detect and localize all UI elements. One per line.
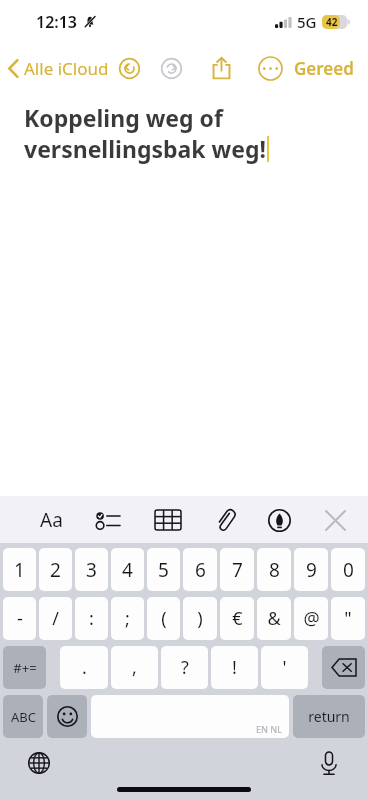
button[interactable]: 6: [183, 548, 217, 591]
button[interactable]: 8: [257, 548, 291, 591]
button[interactable]: 0: [331, 548, 365, 591]
staticText: return: [308, 707, 350, 726]
staticText: 3: [86, 557, 97, 583]
button[interactable]: /: [39, 597, 72, 640]
staticText: 2: [50, 557, 61, 583]
button[interactable]: Change keyboard language: [22, 746, 56, 780]
button[interactable]: Attach: [205, 502, 245, 538]
staticText: 1: [14, 557, 25, 583]
staticText: ?: [181, 655, 189, 680]
button[interactable]: Undo: [116, 55, 142, 81]
staticText: 5: [158, 557, 169, 583]
staticText: /: [52, 606, 59, 631]
staticText: 42: [326, 15, 338, 29]
button[interactable]: Emoji: [47, 695, 87, 738]
staticText: Aa: [40, 507, 63, 533]
button[interactable]: ": [331, 597, 365, 640]
button[interactable]: More: [256, 54, 284, 82]
button[interactable]: Gereed: [286, 51, 368, 86]
button[interactable]: Text format: [30, 502, 72, 538]
staticText: @: [303, 606, 320, 631]
staticText: :: [89, 606, 94, 631]
button[interactable]: Markup: [259, 502, 299, 538]
button[interactable]: Alle iCloud: [0, 51, 115, 86]
staticText: versnellingsbak weg!: [24, 133, 266, 164]
button[interactable]: ?: [161, 646, 208, 689]
staticText: -: [17, 606, 23, 631]
staticText: 6: [195, 557, 206, 583]
staticText: ,: [132, 655, 137, 680]
button[interactable]: Redo: [158, 55, 184, 81]
staticText: ": [344, 606, 352, 631]
staticText: .: [82, 655, 87, 680]
button[interactable]: return: [293, 695, 365, 738]
staticText: !: [232, 655, 237, 680]
staticText: 4: [122, 557, 133, 583]
button[interactable]: Space: [91, 695, 289, 738]
button[interactable]: ': [261, 646, 308, 689]
button[interactable]: ): [183, 597, 217, 640]
staticText: (: [161, 606, 167, 631]
button[interactable]: 1: [3, 548, 36, 591]
button[interactable]: ,: [111, 646, 158, 689]
staticText: €: [232, 606, 243, 631]
button[interactable]: Checklist: [88, 502, 128, 538]
staticText: #+=: [13, 659, 37, 677]
staticText: Alle iCloud: [24, 57, 109, 80]
button[interactable]: Table: [148, 502, 188, 538]
staticText: Koppeling weg of: [24, 102, 223, 133]
button[interactable]: .: [60, 646, 108, 689]
button[interactable]: 5: [147, 548, 180, 591]
button[interactable]: €: [220, 597, 254, 640]
staticText: 12:13: [36, 11, 78, 33]
button[interactable]: @: [294, 597, 328, 640]
button[interactable]: &: [257, 597, 291, 640]
button[interactable]: Close keyboard: [315, 502, 355, 538]
button[interactable]: 2: [39, 548, 72, 591]
staticText: 8: [269, 557, 280, 583]
button[interactable]: 7: [220, 548, 254, 591]
button[interactable]: Share: [207, 54, 235, 82]
staticText: ': [282, 655, 287, 680]
button[interactable]: Dictate: [312, 746, 346, 780]
button[interactable]: (: [147, 597, 180, 640]
button[interactable]: !: [211, 646, 258, 689]
staticText: 7: [232, 557, 243, 583]
button[interactable]: Backspace: [322, 646, 365, 689]
button[interactable]: 3: [75, 548, 108, 591]
staticText: &: [267, 606, 281, 631]
button[interactable]: 4: [111, 548, 144, 591]
staticText: 5G: [297, 12, 317, 32]
staticText: EN NL: [256, 723, 283, 735]
staticText: 9: [306, 557, 317, 583]
button[interactable]: 9: [294, 548, 328, 591]
button[interactable]: #+=: [3, 646, 46, 689]
staticText: ABC: [11, 708, 36, 726]
staticText: ): [197, 606, 203, 631]
button[interactable]: :: [75, 597, 108, 640]
staticText: 0: [343, 557, 354, 583]
staticText: ;: [125, 606, 130, 631]
button[interactable]: ;: [111, 597, 144, 640]
button[interactable]: -: [3, 597, 36, 640]
button[interactable]: ABC: [3, 695, 43, 738]
